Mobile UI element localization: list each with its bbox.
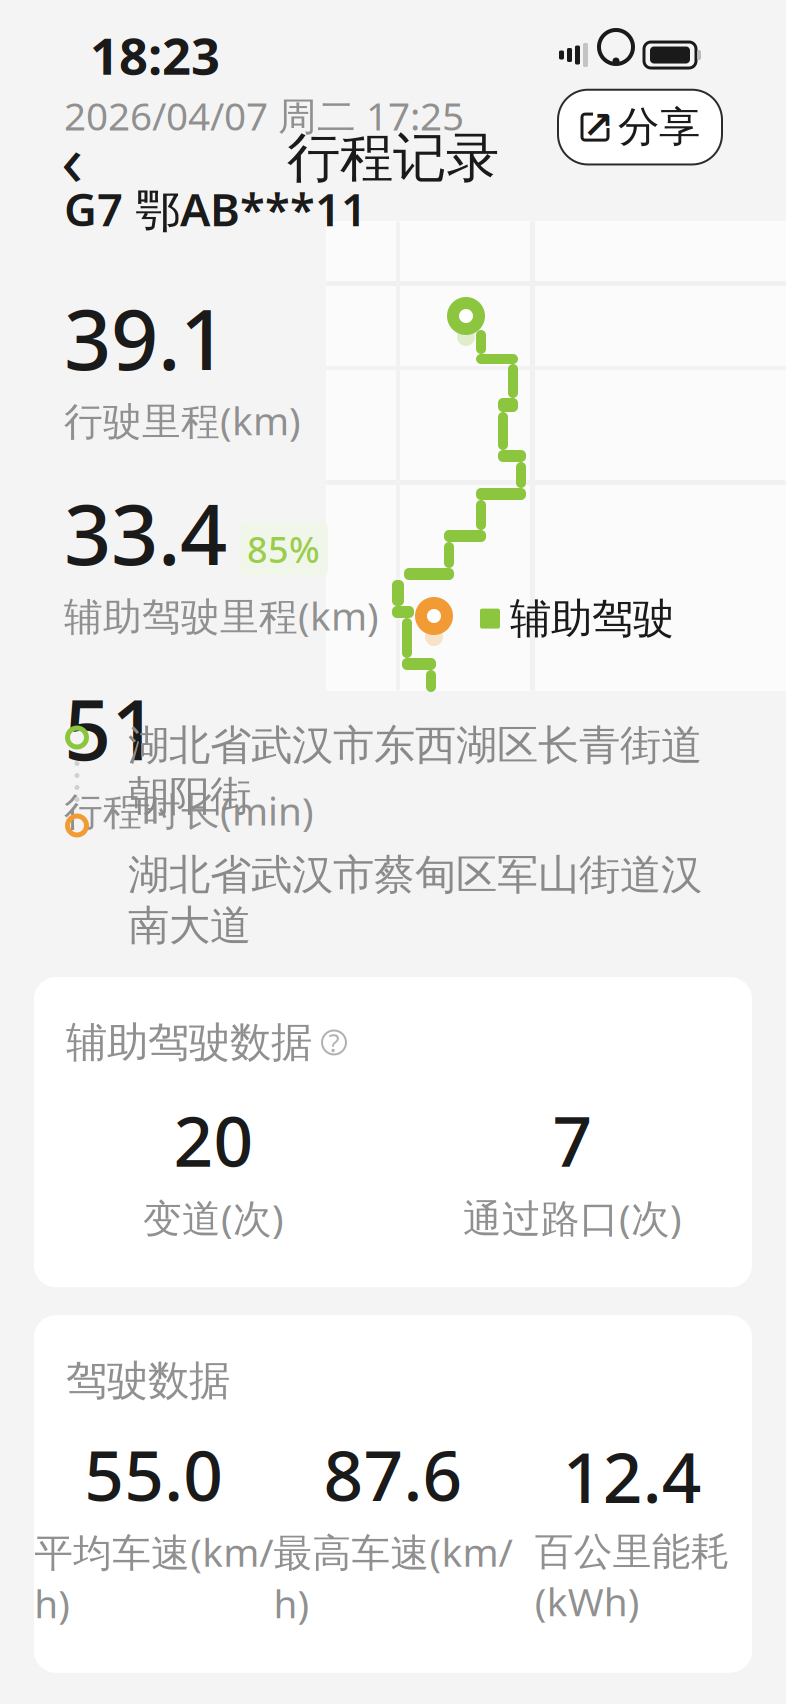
staticText: G7 鄂AB***11	[64, 178, 367, 239]
staticText: 平均车速(km/h)	[34, 1526, 273, 1629]
staticText: 辅助驾驶数据	[66, 1017, 312, 1068]
staticText: 12.4	[563, 1430, 702, 1522]
staticText: 最高车速(km/h)	[273, 1526, 512, 1629]
staticText: 33.4	[64, 478, 227, 588]
staticText: 2026/04/07 周二 17:25	[64, 90, 464, 141]
staticText: 18:23	[90, 21, 220, 89]
staticText: ↗	[582, 104, 613, 146]
staticText: 驾驶数据	[66, 1355, 230, 1406]
staticText: 分享	[618, 102, 700, 152]
button[interactable]: Back	[32, 118, 112, 198]
staticText: 辅助驾驶	[510, 593, 674, 644]
staticText: ‹	[61, 110, 83, 206]
staticText: 变道(次)	[143, 1192, 284, 1243]
button[interactable]: ↗	[558, 90, 722, 164]
staticText: 行程时长(min)	[64, 785, 314, 836]
staticText: 湖北省武汉市蔡甸区军山街道汉南大道	[128, 849, 702, 951]
staticText: 百公里能耗(kWh)	[535, 1528, 730, 1627]
staticText: 行程记录	[287, 125, 499, 191]
staticText: 51	[64, 673, 158, 783]
staticText: 7	[552, 1094, 592, 1186]
staticText: 39.1	[64, 283, 227, 393]
button[interactable]: Info about assisted driving data	[320, 1028, 348, 1056]
staticText: 20	[173, 1094, 253, 1186]
staticText: 85%	[247, 525, 320, 573]
staticText: ?	[328, 1026, 339, 1059]
staticText: 87.6	[323, 1428, 462, 1520]
staticText: 湖北省武汉市东西湖区长青街道朝阳街	[128, 720, 702, 821]
staticText: 辅助驾驶里程(km)	[64, 590, 379, 641]
staticText: 55.0	[84, 1428, 223, 1520]
staticText: 通过路口(次)	[463, 1192, 682, 1243]
staticText: 行驶里程(km)	[64, 395, 301, 446]
